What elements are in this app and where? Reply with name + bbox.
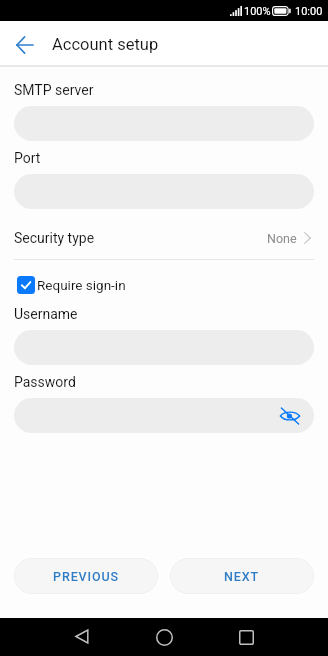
button[interactable]: PREVIOUS xyxy=(14,558,158,594)
staticText: Require sign-in xyxy=(37,277,126,293)
staticText: SMTP server xyxy=(14,82,94,98)
button[interactable]: Require sign-in xyxy=(0,276,328,294)
staticText: Username xyxy=(14,306,78,322)
button[interactable]: Back xyxy=(58,618,106,656)
staticText: 10:00 xyxy=(295,5,323,18)
staticText: None xyxy=(267,231,297,246)
button[interactable]: Recent apps xyxy=(222,618,270,656)
button[interactable]: NEXT xyxy=(170,558,314,594)
button[interactable]: Show password xyxy=(277,403,303,429)
staticText: 100% xyxy=(244,5,271,18)
staticText: Account setup xyxy=(52,35,159,54)
button[interactable]: Back xyxy=(8,28,42,62)
button[interactable]: Security type xyxy=(0,226,328,250)
button[interactable]: Show password xyxy=(14,398,314,433)
staticText: Password xyxy=(14,374,76,390)
staticText: PREVIOUS xyxy=(53,569,120,584)
staticText: Security type xyxy=(14,230,95,246)
staticText: Port xyxy=(14,150,41,166)
button[interactable]: Home xyxy=(140,618,188,656)
staticText: NEXT xyxy=(224,569,260,584)
